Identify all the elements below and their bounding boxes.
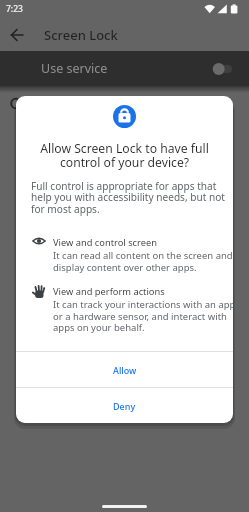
staticText: Allow Screen Lock to have full control o… — [16, 140, 233, 171]
staticText: Use service — [41, 60, 108, 77]
staticText: Allow — [113, 364, 137, 376]
staticText: It can track your interactions with an a… — [53, 298, 233, 334]
staticText: Screen Lock — [44, 26, 118, 44]
staticText: Deny — [113, 400, 136, 412]
button[interactable]: Deny — [16, 388, 233, 423]
staticText: View and perform actions — [53, 285, 165, 298]
button[interactable]: Use service — [0, 51, 249, 86]
staticText: View and control screen — [53, 236, 157, 249]
button[interactable] — [11, 29, 23, 41]
staticText: 7:23 — [6, 3, 23, 15]
staticText: Full control is appropriate for apps tha… — [31, 179, 225, 216]
staticText: It can read all content on the screen an… — [53, 249, 233, 274]
button[interactable]: Allow — [16, 352, 233, 387]
